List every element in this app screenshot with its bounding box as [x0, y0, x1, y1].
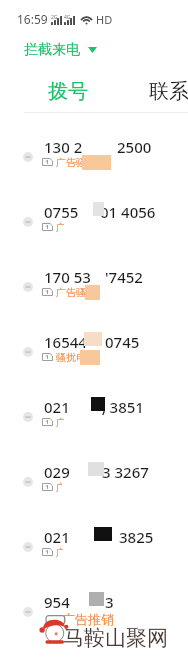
- staticText: 拨号: [48, 79, 88, 104]
- button[interactable]: Remove: [0, 373, 188, 438]
- other: Remove: [23, 152, 33, 162]
- staticText: 2500: [117, 137, 152, 157]
- button[interactable]: Remove: [0, 113, 188, 178]
- staticText: 0745: [105, 332, 140, 352]
- staticText: HD: [96, 12, 113, 27]
- staticText: 3 3267: [102, 462, 149, 482]
- other: Remove: [23, 607, 33, 617]
- staticText: 拦截来电: [24, 41, 80, 59]
- staticText: 广告骚扰: [56, 481, 96, 494]
- button[interactable]: Remove: [0, 308, 188, 373]
- button[interactable]: Remove: [0, 503, 188, 568]
- staticText: 骚扰电话: [56, 351, 96, 364]
- staticText: 021: [44, 397, 70, 417]
- button[interactable]: 拦截来电: [18, 38, 103, 62]
- staticText: 16:59: [17, 11, 48, 27]
- button[interactable]: 拨号: [26, 72, 110, 110]
- staticText: 16544: [44, 332, 87, 352]
- other: Remove: [23, 477, 33, 487]
- button[interactable]: 联系人: [126, 72, 188, 110]
- other: Remove: [23, 217, 33, 227]
- staticText: 广告骚扰: [56, 156, 96, 169]
- staticText: 广告骚扰: [56, 416, 96, 429]
- button[interactable]: Remove: [0, 178, 188, 243]
- staticText: 马鞍山聚网: [63, 625, 168, 651]
- staticText: 170 53: [44, 267, 91, 287]
- staticText: 954: [44, 592, 70, 612]
- button[interactable]: Remove: [0, 568, 188, 633]
- staticText: 广告骚扰: [56, 546, 96, 559]
- button[interactable]: Remove: [0, 438, 188, 503]
- staticText: 0755: [44, 202, 79, 222]
- staticText: 130 2: [44, 137, 83, 157]
- staticText: 广告推销: [62, 611, 114, 627]
- staticText: 3: [105, 592, 114, 612]
- other: Remove: [23, 347, 33, 357]
- staticText: ) 3851: [101, 397, 144, 417]
- staticText: '7452: [105, 267, 143, 287]
- staticText: 3825: [119, 527, 154, 547]
- other: Remove: [23, 412, 33, 422]
- other: Remove: [23, 542, 33, 552]
- other: Remove: [23, 282, 33, 292]
- staticText: 联系人: [149, 79, 188, 104]
- staticText: 4G: [64, 14, 71, 21]
- staticText: 029: [44, 462, 70, 482]
- staticText: 01 4056: [100, 202, 156, 222]
- staticText: 2G: [51, 14, 58, 21]
- staticText: 021: [44, 527, 70, 547]
- staticText: 广告骚扰: [56, 221, 96, 234]
- staticText: 广告骚扰: [56, 286, 96, 299]
- button[interactable]: Remove: [0, 243, 188, 308]
